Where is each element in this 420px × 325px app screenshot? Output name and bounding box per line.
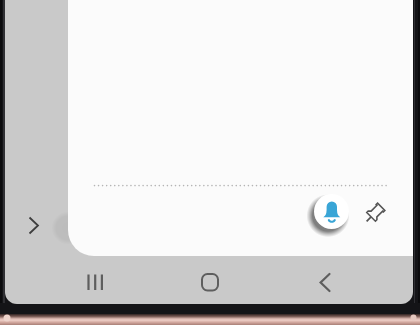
button[interactable] xyxy=(361,201,387,227)
button[interactable] xyxy=(302,262,348,302)
button[interactable] xyxy=(73,262,119,302)
button[interactable] xyxy=(23,212,49,238)
button[interactable] xyxy=(314,194,349,229)
button[interactable] xyxy=(187,262,233,302)
